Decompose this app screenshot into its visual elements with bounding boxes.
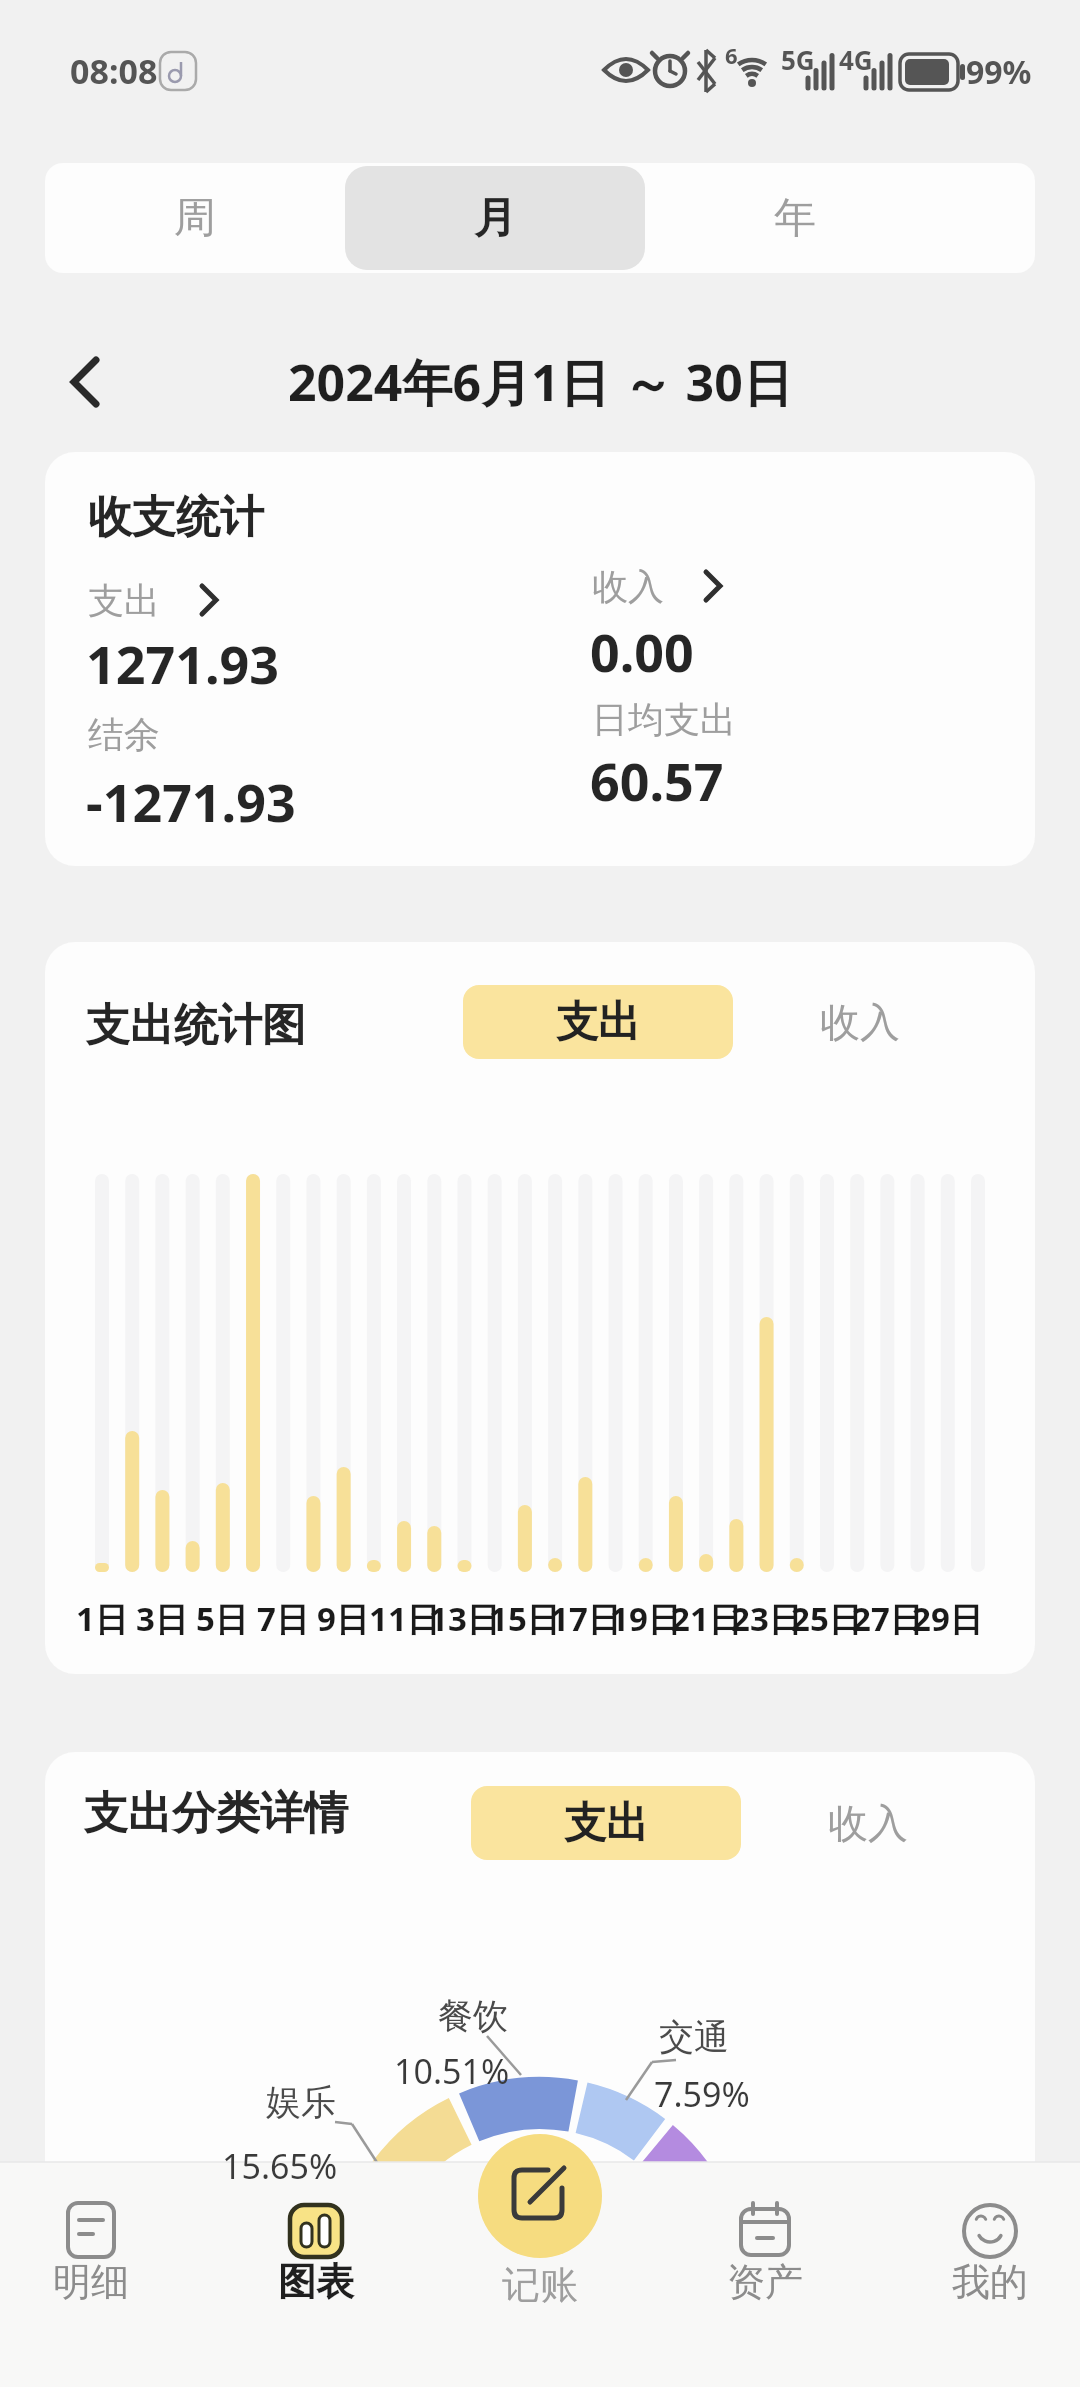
staticText: 收入 (828, 1798, 908, 1848)
button[interactable]: 资产 (690, 2190, 840, 2320)
staticText: 1271.93 (86, 628, 280, 699)
staticText: 我的 (952, 2258, 1028, 2306)
staticText: 13日 (429, 1596, 500, 1641)
staticText: 支出 (556, 996, 640, 1049)
staticText: 7.59% (654, 2071, 750, 2117)
staticText: -1271.93 (86, 766, 296, 837)
staticText: 记账 (502, 2261, 578, 2309)
staticText: 收入 (820, 997, 900, 1047)
staticText: 0.00 (590, 616, 694, 687)
staticText: 10.51% (394, 2048, 510, 2094)
staticText: 2024年6月1日 ～ 30日 (288, 348, 793, 416)
staticText: 5G (781, 42, 815, 77)
staticText: 日均支出 (592, 697, 736, 742)
staticText: 99% (966, 50, 1032, 94)
button[interactable]: 我的 (915, 2190, 1065, 2320)
button[interactable] (58, 352, 118, 412)
staticText: 年 (774, 192, 816, 245)
staticText: 19日 (610, 1596, 681, 1641)
staticText: 29日 (912, 1596, 983, 1641)
staticText: 11日 (369, 1596, 440, 1641)
staticText: 23日 (731, 1596, 802, 1641)
staticText: 7日 (257, 1596, 309, 1641)
button[interactable] (478, 2134, 602, 2258)
staticText: 15.65% (222, 2143, 338, 2189)
staticText: 25日 (791, 1596, 862, 1641)
staticText: 餐饮 (438, 1994, 508, 2038)
staticText: 收入 (592, 564, 664, 609)
button[interactable]: 收入 (798, 1786, 938, 1860)
staticText: 1日 (76, 1596, 128, 1641)
staticText: 9日 (317, 1596, 369, 1641)
staticText: 17日 (550, 1596, 621, 1641)
staticText: 支出 (88, 578, 160, 623)
staticText: 图表 (278, 2258, 354, 2306)
staticText: 5日 (196, 1596, 248, 1641)
staticText: 3日 (136, 1596, 188, 1641)
button[interactable]: 支出 (471, 1786, 741, 1860)
staticText: 15日 (489, 1596, 560, 1641)
staticText: 支出分类详情 (84, 1786, 348, 1841)
button[interactable]: 支出 (463, 985, 733, 1059)
staticText: 6 (725, 40, 738, 70)
staticText: 交通 (659, 2015, 729, 2059)
staticText: 收支统计 (88, 490, 264, 545)
staticText: 60.57 (590, 745, 724, 816)
staticText: 支出 (564, 1797, 648, 1850)
button[interactable]: 记账 (465, 2250, 615, 2320)
button[interactable]: 图表 (241, 2190, 391, 2320)
staticText: 结余 (88, 712, 160, 757)
staticText: 月 (474, 192, 516, 245)
button[interactable]: 明细 (16, 2190, 166, 2320)
staticText: 娱乐 (266, 2080, 336, 2124)
staticText: 08:08 (70, 48, 158, 94)
staticText: 周 (174, 192, 216, 245)
staticText: 支出统计图 (86, 998, 306, 1053)
staticText: 21日 (671, 1596, 742, 1641)
button[interactable] (345, 166, 645, 270)
button[interactable]: 月 (345, 163, 645, 273)
button[interactable]: 年 (645, 163, 945, 273)
button[interactable]: 收入 (790, 985, 930, 1059)
staticText: 27日 (852, 1596, 923, 1641)
button[interactable]: 周 (45, 163, 345, 273)
staticText: 资产 (727, 2258, 803, 2306)
staticText: 4G (839, 42, 873, 77)
staticText: 明细 (53, 2258, 129, 2306)
